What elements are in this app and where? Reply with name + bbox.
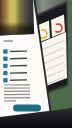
button[interactable] bbox=[0, 0, 72, 128]
